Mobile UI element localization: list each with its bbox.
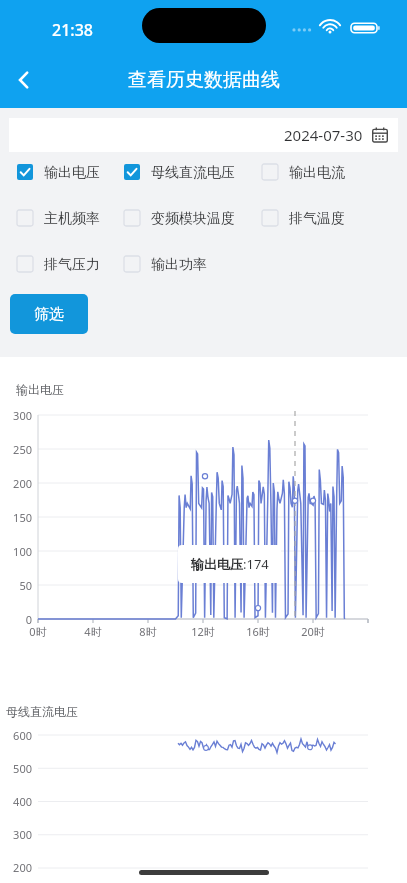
staticText: 排气压力 [44,256,100,272]
button[interactable]: 输出功率 [124,256,207,272]
staticText: 输出电压 [44,164,100,180]
button[interactable]: 主机频率 [17,210,100,226]
staticText: 12时 [189,624,217,639]
staticText: 250 [0,442,32,457]
staticText: :174 [243,555,269,573]
staticText: 21:38 [52,19,93,41]
button[interactable]: Back [0,56,48,104]
staticText: 400 [0,794,32,809]
staticText: 输出电压 [191,556,243,572]
button[interactable]: 母线直流电压 [124,164,235,180]
staticText: 查看历史数据曲线 [128,68,280,92]
staticText: 母线直流电压 [6,704,78,719]
staticText: 输出电流 [289,164,345,180]
button[interactable]: 排气压力 [17,256,100,272]
button[interactable]: 筛选 [10,294,88,334]
button[interactable]: 排气温度 [262,210,345,226]
button[interactable]: 输出电压 [17,164,100,180]
staticText: 200 [0,476,32,491]
staticText: 2024-07-30 [284,125,363,145]
staticText: 变频模块温度 [151,210,235,226]
staticText: 排气温度 [289,210,345,226]
staticText: 150 [0,510,32,525]
staticText: 0 [0,612,32,627]
staticText: 50 [0,578,32,593]
staticText: 300 [0,827,32,842]
button[interactable]: 2024-07-30 [9,118,398,152]
staticText: 筛选 [34,305,64,324]
staticText: 200 [0,860,32,875]
staticText: 输出电压 [16,382,64,397]
staticText: 500 [0,761,32,776]
staticText: 输出功率 [151,256,207,272]
staticText: 600 [0,728,32,743]
staticText: 100 [0,544,32,559]
staticText: 16时 [244,624,272,639]
staticText: 主机频率 [44,210,100,226]
staticText: 0时 [24,624,52,639]
button[interactable]: 输出电流 [262,164,345,180]
staticText: 300 [0,408,32,423]
staticText: 8时 [134,624,162,639]
button[interactable]: 变频模块温度 [124,210,235,226]
staticText: 20时 [299,624,327,639]
staticText: 母线直流电压 [151,164,235,180]
staticText: 4时 [79,624,107,639]
